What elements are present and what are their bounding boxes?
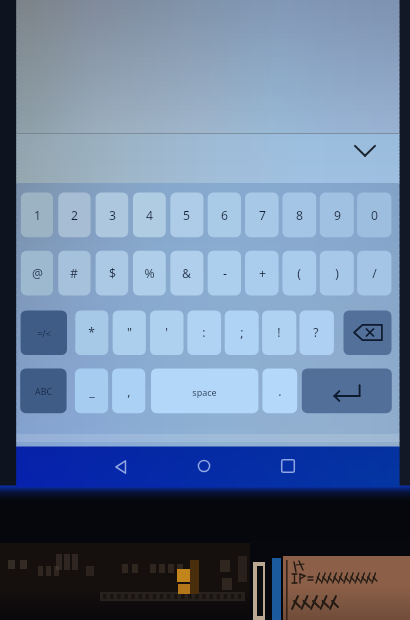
staticText: 6 [221,207,228,224]
staticText: ( [297,265,301,282]
button[interactable]: * [75,310,108,355]
button[interactable]: ! [262,310,296,355]
staticText: 0 [371,207,378,224]
button[interactable]: $ [96,251,129,296]
button[interactable]: 8 [282,193,316,238]
button[interactable]: % [133,251,166,296]
staticText: 4 [146,207,153,224]
button[interactable]: _ [75,369,108,414]
button[interactable]: . [262,369,297,414]
button[interactable]: : [187,310,221,355]
staticText: / [372,265,377,282]
button[interactable]: 3 [96,193,129,238]
staticText: 5 [183,207,190,224]
staticText: # [70,265,78,282]
button[interactable]: " [113,310,146,355]
button[interactable]: 9 [320,193,354,238]
button[interactable]: Home [190,452,218,480]
button[interactable]: / [357,251,391,296]
button[interactable]: Recent apps [274,452,302,480]
button[interactable]: ' [150,310,183,355]
button[interactable]: 6 [208,193,241,238]
button[interactable]: ? [299,310,333,355]
button[interactable]: =/< [21,310,67,355]
button[interactable]: Backspace [344,310,392,355]
staticText: & [182,265,191,282]
staticText: ' [165,324,168,341]
button[interactable]: ) [320,251,354,296]
staticText: 3 [109,207,116,224]
staticText: 1 [34,207,41,224]
button[interactable]: 0 [357,193,391,238]
button[interactable]: ; [225,310,259,355]
staticText: . [278,383,282,400]
button[interactable]: - [208,251,241,296]
staticText: =/< [37,327,51,339]
staticText: ; [240,324,244,341]
button[interactable]: Enter [302,369,392,414]
staticText: 2 [71,207,78,224]
staticText: , [127,383,131,400]
button[interactable]: 2 [58,193,90,238]
staticText: @ [32,265,43,282]
button[interactable]: , [112,369,145,414]
staticText: 8 [296,207,303,224]
button[interactable]: @ [21,251,53,296]
staticText: % [144,265,155,282]
button[interactable]: 7 [245,193,279,238]
button[interactable]: space [151,369,258,414]
button[interactable]: 5 [170,193,203,238]
staticText: ABC [35,386,52,398]
staticText: ! [277,324,281,341]
button[interactable]: + [245,251,279,296]
staticText: - [223,265,227,282]
staticText: ? [313,324,319,341]
button[interactable]: ABC [20,369,66,414]
staticText: * [88,324,95,341]
button[interactable]: & [170,251,203,296]
staticText: $ [109,265,116,282]
staticText: space [192,386,217,398]
staticText: + [259,265,266,282]
staticText: _ [89,383,95,400]
staticText: 7 [259,207,266,224]
button[interactable]: 1 [21,193,53,238]
button[interactable]: # [58,251,90,296]
staticText: 9 [334,207,341,224]
button[interactable]: ( [282,251,316,296]
button[interactable]: Hide keyboard [345,136,385,166]
button[interactable]: 4 [133,193,166,238]
staticText: ) [335,265,339,282]
staticText: " [127,324,132,341]
button[interactable]: Back [107,453,135,481]
staticText: : [202,324,206,341]
